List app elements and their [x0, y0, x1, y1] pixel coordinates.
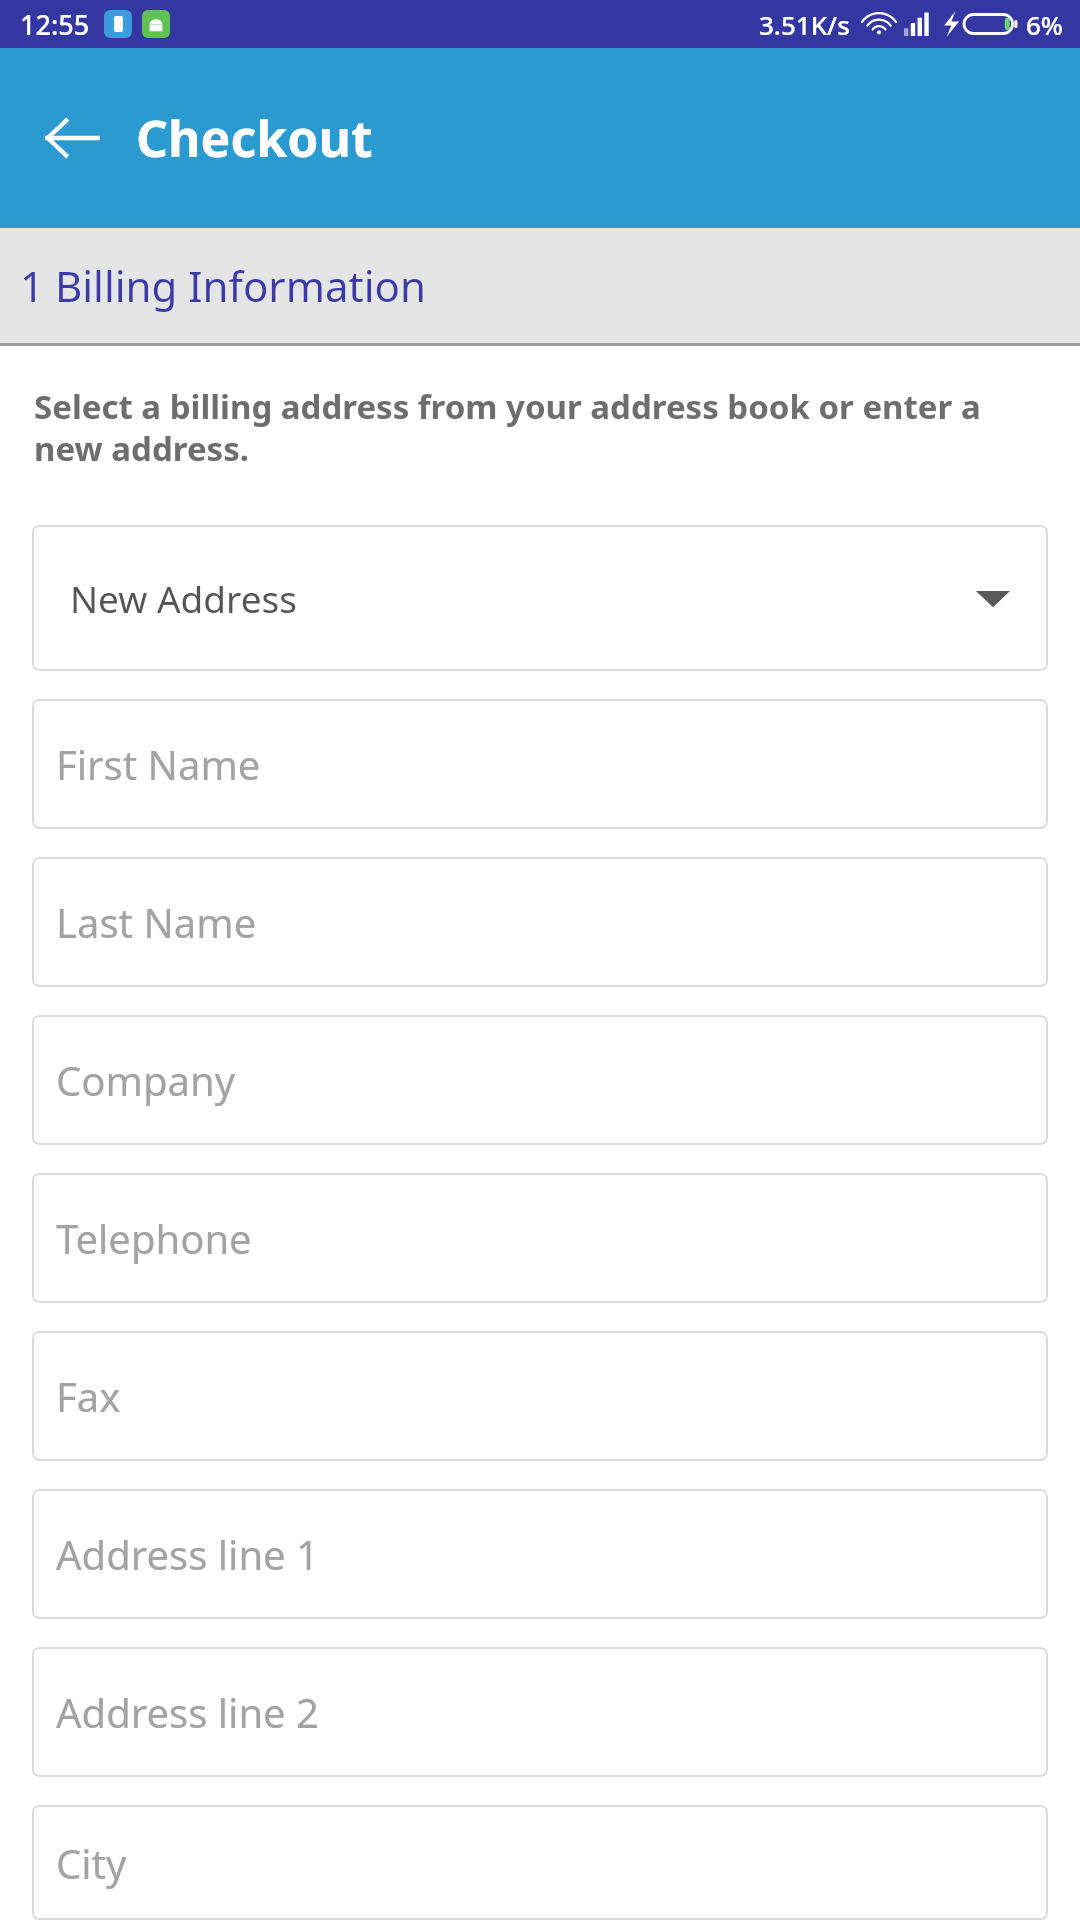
staticText: Address line 2	[56, 1685, 319, 1739]
staticText: Address line 1	[56, 1527, 319, 1581]
button[interactable]: City	[32, 1805, 1048, 1920]
staticText: Fax	[56, 1369, 121, 1423]
button[interactable]: Fax	[32, 1331, 1048, 1461]
button[interactable]: 1 Billing Information	[0, 228, 1080, 343]
staticText: Telephone	[56, 1211, 252, 1265]
button[interactable]: First Name	[32, 699, 1048, 829]
staticText: Company	[56, 1053, 236, 1107]
staticText: City	[56, 1836, 127, 1890]
button[interactable]: Company	[32, 1015, 1048, 1145]
button[interactable]: Address line 1	[32, 1489, 1048, 1619]
button[interactable]: New Address	[32, 525, 1048, 671]
staticText: Checkout	[136, 104, 373, 172]
staticText: Last Name	[56, 895, 257, 949]
button[interactable]: Last Name	[32, 857, 1048, 987]
staticText: New Address	[70, 573, 297, 623]
button[interactable]: Address line 2	[32, 1647, 1048, 1777]
staticText: Select a billing address from your addre…	[34, 384, 1020, 471]
button[interactable]: Back	[28, 94, 116, 182]
staticText: 12:55	[20, 6, 90, 43]
staticText: 1 Billing Information	[20, 257, 426, 314]
button[interactable]: Telephone	[32, 1173, 1048, 1303]
staticText: 3.51K/s	[759, 7, 850, 42]
staticText: 6%	[1026, 7, 1064, 42]
staticText: First Name	[56, 737, 261, 791]
